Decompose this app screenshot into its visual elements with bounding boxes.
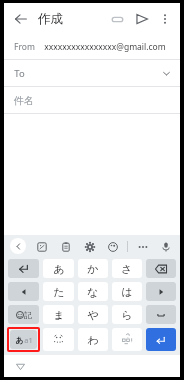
button[interactable]: Expand toolbar — [10, 238, 26, 254]
button[interactable]: は — [112, 282, 142, 301]
button[interactable]: Move cursor right — [146, 282, 176, 301]
button[interactable]: Switch input mode — [10, 330, 37, 349]
button[interactable]: か — [78, 259, 108, 278]
button[interactable]: Backspace — [146, 259, 176, 278]
button[interactable]: な — [78, 282, 108, 301]
button[interactable]: 件名 — [4, 87, 180, 113]
staticText: な — [87, 285, 99, 299]
button[interactable]: From — [4, 34, 180, 59]
button[interactable]: Punctuation — [112, 328, 142, 351]
staticText: や — [87, 308, 99, 322]
staticText: か — [87, 262, 99, 276]
button[interactable]: ま — [43, 305, 74, 324]
staticText: ま — [53, 308, 65, 322]
staticText: 作成 — [38, 11, 63, 27]
button[interactable]: Space — [146, 305, 176, 324]
button[interactable]: Stickers — [33, 238, 50, 255]
staticText: xxxxxxxxxxxxxxxx@gmail.com — [44, 41, 166, 53]
staticText: た — [53, 285, 65, 299]
button[interactable]: Back — [10, 8, 32, 30]
button[interactable]: や — [78, 305, 108, 324]
staticText: a1 — [24, 335, 33, 345]
staticText: 記 — [24, 310, 32, 320]
button[interactable]: わ — [78, 328, 108, 351]
button[interactable]: Move cursor left — [8, 282, 39, 301]
button[interactable]: さ — [112, 259, 142, 278]
staticText: ら — [121, 308, 133, 322]
button[interactable]: Undo — [8, 259, 39, 278]
button[interactable]: Voice input — [157, 238, 174, 255]
button[interactable]: More — [134, 238, 151, 255]
staticText: は — [121, 285, 133, 299]
button[interactable]: た — [43, 282, 74, 301]
staticText: あ — [53, 262, 65, 276]
staticText: わ — [87, 333, 99, 347]
button[interactable]: To — [4, 60, 180, 86]
staticText: To — [14, 67, 25, 80]
staticText: 件名 — [14, 94, 34, 107]
staticText: From — [14, 41, 35, 53]
button[interactable]: Enter — [146, 328, 176, 351]
button[interactable]: Send — [132, 9, 152, 29]
button[interactable]: Settings — [81, 238, 98, 255]
staticText: あ — [15, 335, 24, 345]
button[interactable]: Attach file — [107, 9, 127, 29]
button[interactable]: Hide keyboard — [12, 358, 28, 374]
button[interactable]: ら — [112, 305, 142, 324]
button[interactable]: Clipboard — [57, 238, 74, 255]
button[interactable]: Emoticons — [43, 328, 74, 351]
button[interactable]: Theme — [104, 238, 121, 255]
button[interactable]: More options — [155, 9, 175, 29]
button[interactable]: Emoji and symbols — [8, 305, 39, 324]
button[interactable]: あ — [43, 259, 74, 278]
staticText: さ — [121, 262, 133, 276]
